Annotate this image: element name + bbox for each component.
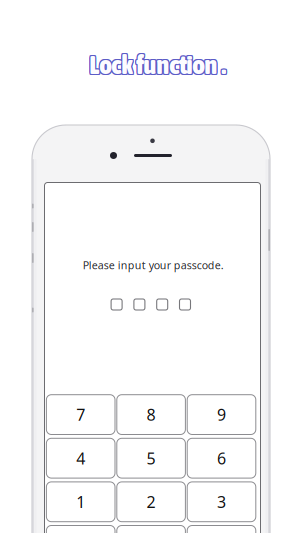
button[interactable]: 3 [187, 482, 256, 522]
staticText: 7 [76, 404, 85, 425]
staticText: Lock function . [88, 50, 225, 79]
button[interactable]: 2 [117, 482, 185, 522]
staticText: 3 [217, 491, 226, 512]
staticText: Lock function . [89, 50, 226, 79]
button[interactable]: 7 [46, 395, 115, 434]
button[interactable]: 5 [117, 438, 185, 478]
staticText: 5 [147, 448, 156, 469]
staticText: Lock function . [88, 49, 225, 78]
button[interactable]: 4 [46, 438, 115, 478]
staticText: 6 [217, 448, 226, 469]
staticText: Lock function . [90, 50, 227, 79]
staticText: Lock function . [90, 49, 227, 78]
button[interactable]: 6 [187, 438, 256, 478]
button[interactable]: 8 [117, 395, 185, 434]
button[interactable]: 9 [187, 395, 256, 434]
staticText: 8 [147, 404, 156, 425]
staticText: 1 [76, 491, 85, 512]
staticText: Lock function . [90, 51, 227, 80]
staticText: Lock function . [89, 49, 226, 78]
button[interactable]: 0 [117, 525, 185, 533]
staticText: Lock function . [89, 51, 226, 80]
staticText: 9 [217, 404, 226, 425]
staticText: Please input your passcode. [83, 258, 224, 272]
button[interactable] [46, 525, 115, 533]
button[interactable] [187, 525, 256, 533]
staticText: Lock function . [88, 51, 225, 80]
button[interactable]: 1 [46, 482, 115, 522]
staticText: 4 [76, 448, 85, 469]
staticText: 2 [147, 491, 156, 512]
